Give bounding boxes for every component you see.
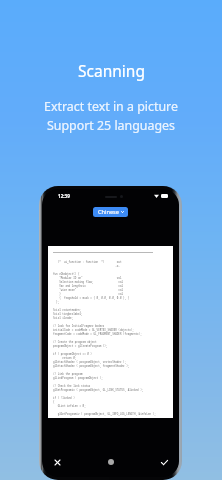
staticText: if ( !linked ) xyxy=(53,396,75,400)
staticText: 12:39 xyxy=(58,193,70,199)
staticText: "Modular ID on" val xyxy=(53,276,122,280)
staticText: Scanning xyxy=(78,60,145,81)
staticText: glGetProgramiv ( programObject, GL_INFO_… xyxy=(53,412,156,416)
staticText: fun rObabject() { xyxy=(53,272,80,276)
staticText: // Check the link status xyxy=(53,384,91,388)
button[interactable]: Confirm xyxy=(150,447,178,477)
staticText: // Create the program object xyxy=(53,340,97,344)
staticText: } val xyxy=(53,292,124,296)
staticText: return 0; xyxy=(53,356,77,360)
staticText: // look for InitialFragmer boders xyxy=(53,324,105,328)
staticText: { frogahold = musk = { 0, 0.0, 0.0, 0.0 … xyxy=(53,296,130,300)
staticText: if ( programObject == 0 ) xyxy=(53,352,92,356)
staticText: glLinkProgram ( programObject ); xyxy=(53,376,103,380)
staticText: -o- xyxy=(53,264,120,268)
staticText: /* ui_function : function */ out xyxy=(53,260,122,264)
staticText: }; xyxy=(53,300,60,304)
staticText: glGetProgramiv ( programObject, GL_LINK_… xyxy=(53,388,144,392)
staticText: { xyxy=(53,400,55,404)
button[interactable]: Cancel xyxy=(43,447,71,477)
staticText: Scirl ilnode; xyxy=(53,316,74,320)
staticText: GLint infoLen = 0; xyxy=(53,404,86,408)
staticText: programObject = glCreateProgram (); xyxy=(53,344,108,348)
staticText: fragmentCode = codeMode = GL_FRAGMENT_SH… xyxy=(53,332,142,336)
staticText: Scirl ratzetmoden; xyxy=(53,308,82,312)
staticText: Selection making flow; val xyxy=(53,280,124,284)
staticText: Scirl tingberlabel; xyxy=(53,312,83,316)
staticText: glAttachShader ( programObject, fragment… xyxy=(53,364,130,368)
staticText: "wire more" val xyxy=(53,288,124,292)
staticText: Chinese xyxy=(98,208,119,216)
staticText: Extract text in a picture xyxy=(44,98,178,115)
staticText: glAttachShader ( programObject, vertexSh… xyxy=(53,360,127,364)
staticText: Support 25 languages xyxy=(47,117,175,134)
staticText: // Link the program xyxy=(53,372,83,376)
button[interactable]: Chinese xyxy=(93,207,128,217)
button[interactable]: Capture xyxy=(97,447,125,477)
staticText: initialCode = codeMode = GL_VERTEX_SHADE… xyxy=(53,328,134,332)
staticText: Var and lengthrix val xyxy=(53,284,124,288)
